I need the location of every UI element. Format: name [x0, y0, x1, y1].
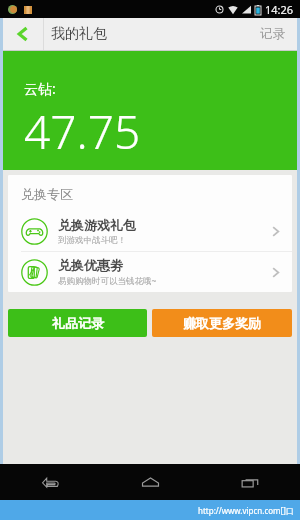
- button[interactable]: 兑换优惠劵: [8, 252, 292, 292]
- button[interactable]: Back: [3, 18, 43, 50]
- staticText: 我的礼包: [51, 25, 107, 43]
- staticText: 兑换游戏礼包: [58, 217, 136, 233]
- staticText: 易购购物时可以当钱花哦~: [58, 275, 157, 287]
- staticText: 云钻:: [24, 79, 56, 98]
- staticText: 兑换专区: [21, 186, 73, 202]
- staticText: 兑换优惠劵: [58, 257, 123, 273]
- button[interactable]: 记录: [248, 18, 297, 50]
- staticText: 礼品记录: [52, 315, 104, 331]
- button[interactable]: Back: [0, 464, 100, 500]
- staticText: 到游戏中战斗吧！: [58, 235, 126, 246]
- staticText: 记录: [260, 26, 285, 42]
- staticText: 赚取更多奖励: [183, 315, 261, 331]
- staticText: 14:26: [265, 2, 294, 17]
- button[interactable]: Home: [100, 464, 200, 500]
- button[interactable]: 礼品记录: [8, 309, 147, 337]
- button[interactable]: 赚取更多奖励: [152, 309, 292, 337]
- button[interactable]: Recents: [200, 464, 300, 500]
- staticText: 47.75: [24, 100, 141, 163]
- staticText: http://www.vipcn.com[]口: [198, 505, 294, 516]
- button[interactable]: 兑换游戏礼包: [8, 211, 292, 251]
